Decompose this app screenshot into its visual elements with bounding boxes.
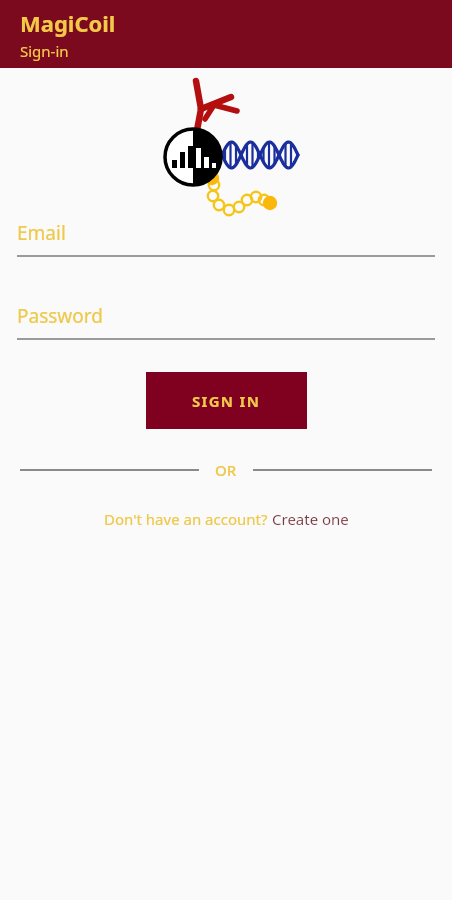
staticText: Password [17,303,103,329]
staticText: Sign-in [20,41,69,61]
button[interactable]: Don't have an account? [96,505,357,533]
other: MagiCoil logo [0,68,452,220]
staticText: OR [215,460,237,480]
staticText: Don't have an account? [104,509,272,529]
button[interactable]: Password [0,303,452,340]
button[interactable]: SIGN IN [146,372,307,429]
button[interactable]: Email [0,220,452,257]
staticText: Email [17,220,66,246]
staticText: SIGN IN [192,391,261,411]
staticText: Create one [272,509,349,529]
staticText: MagiCoil [20,8,116,38]
